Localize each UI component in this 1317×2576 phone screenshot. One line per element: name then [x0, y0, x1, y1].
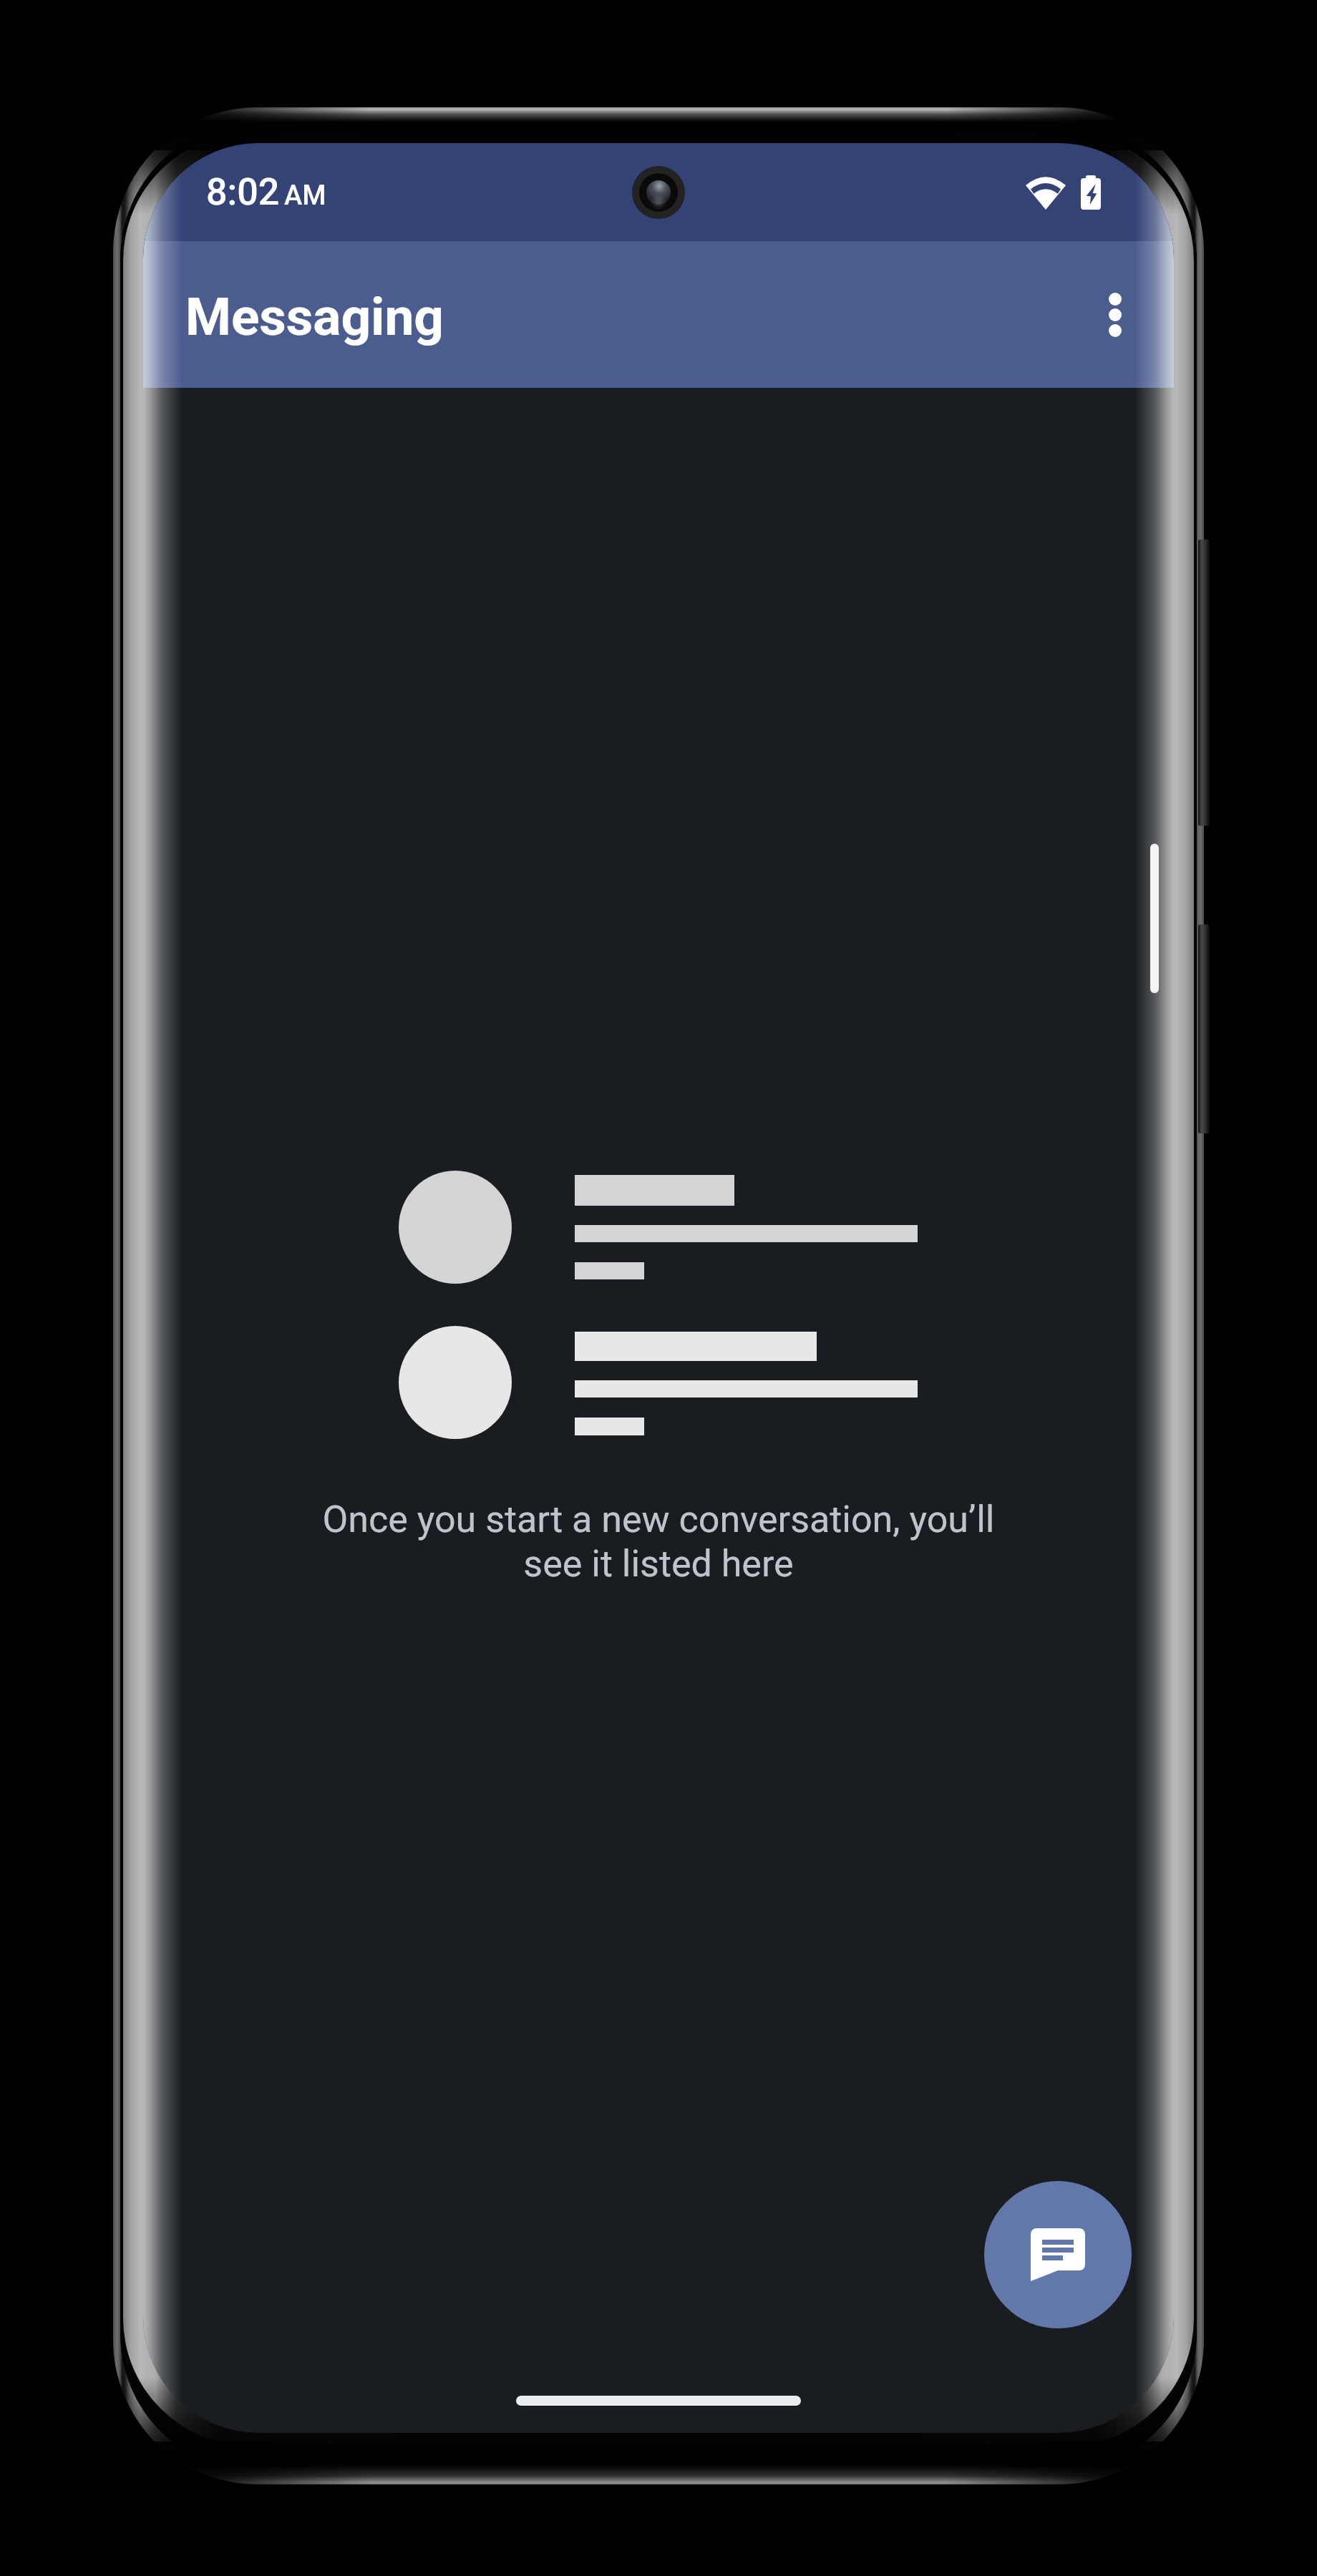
button[interactable]: More options	[1068, 268, 1162, 362]
staticText: Messaging	[185, 286, 444, 348]
staticText: 8:02	[206, 170, 280, 214]
button[interactable]: Start new conversation	[984, 2181, 1132, 2328]
staticText: AM	[284, 180, 326, 212]
staticText: Once you start a new conversation, you’l…	[303, 1498, 1014, 1586]
